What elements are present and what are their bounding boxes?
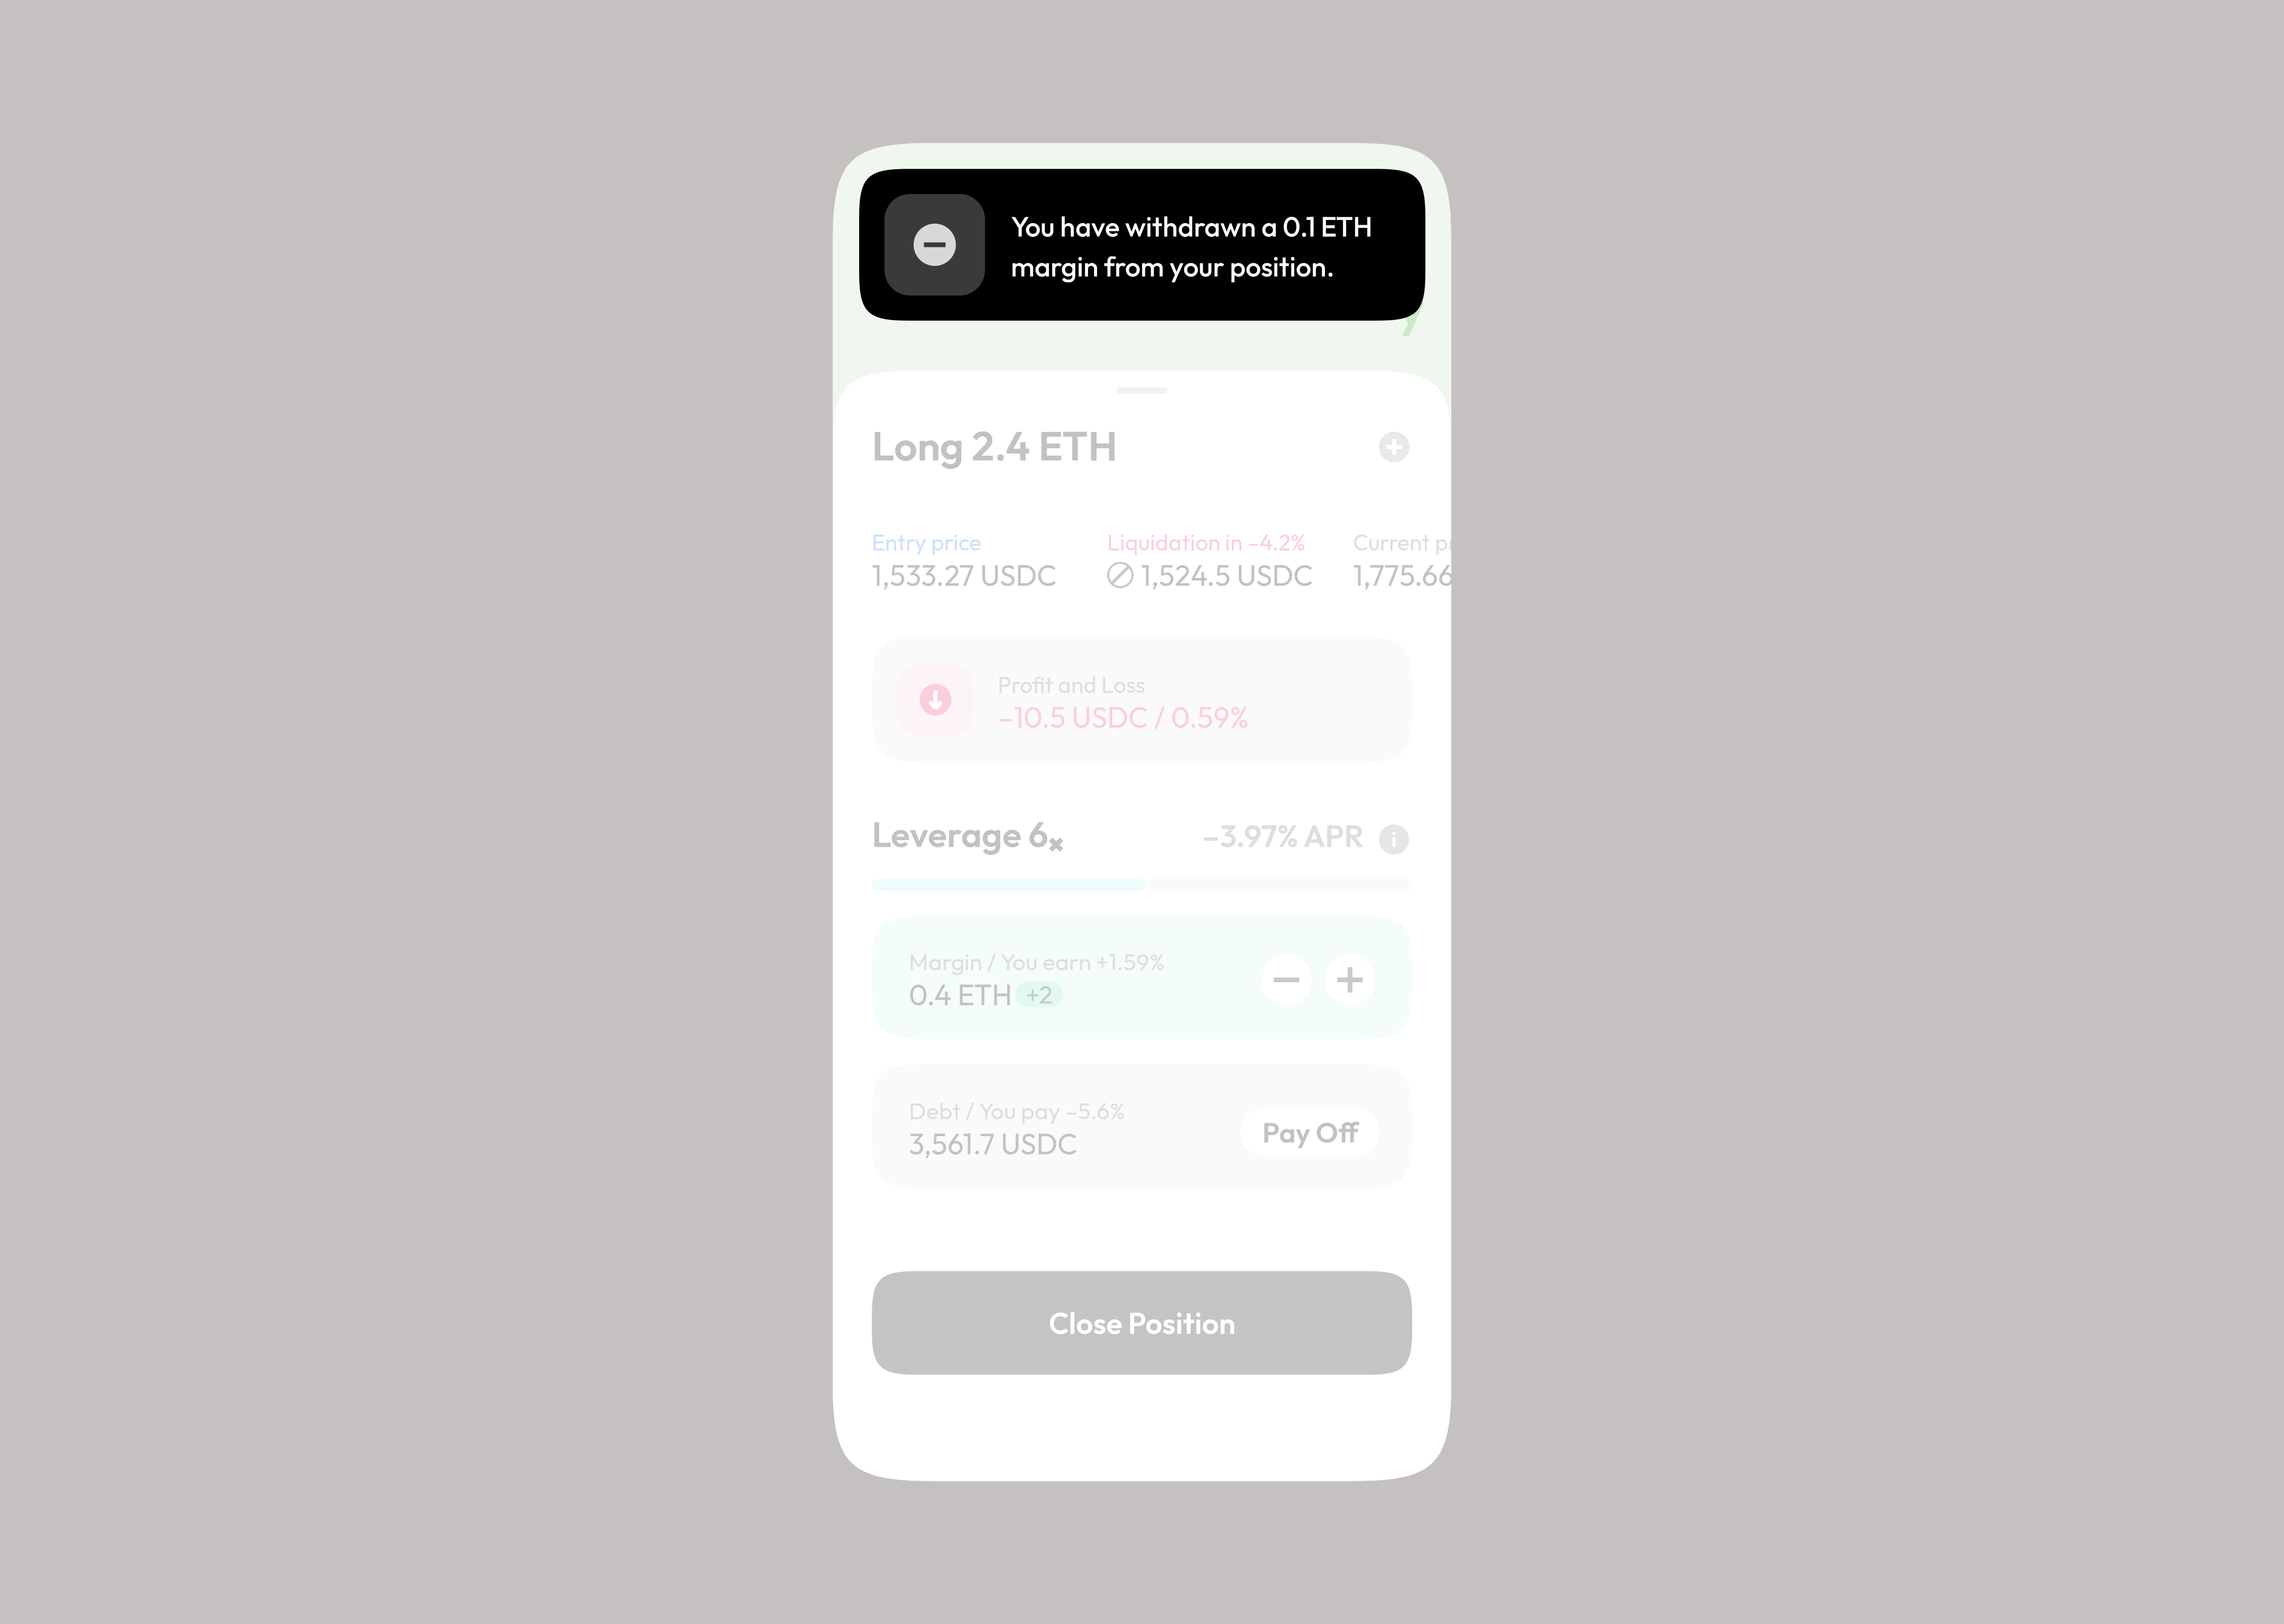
button[interactable]: Add to position: [1379, 432, 1410, 462]
staticText: Margin / You earn +1.59%: [909, 947, 1165, 976]
staticText: 1,524.5 USDC: [1141, 557, 1313, 593]
staticText: –3.97% APR: [1202, 816, 1364, 855]
staticText: Long 2.4 ETH: [872, 420, 1118, 471]
staticText: y: [1398, 277, 1424, 339]
staticText: You have withdrawn a 0.1 ETH margin from…: [1011, 209, 1373, 284]
button[interactable]: Close Position: [872, 1271, 1412, 1375]
button[interactable]: You have withdrawn a 0.1 ETH margin from…: [859, 169, 1425, 321]
button[interactable]: Decrease margin: [1261, 955, 1312, 1005]
button[interactable]: Pay Off: [1241, 1108, 1380, 1156]
staticText: 1,775.66 USDC: [1353, 557, 1537, 593]
staticText: Liquidation in –4.2%: [1107, 528, 1305, 556]
staticText: –10.5 USDC / 0.59%: [998, 699, 1249, 735]
staticText: +2: [1026, 979, 1052, 1010]
staticText: Entry price: [872, 528, 981, 556]
staticText: 1,533.27 USDC: [872, 557, 1057, 593]
staticText: Current price: [1353, 528, 1485, 556]
staticText: Close Position: [1049, 1304, 1235, 1342]
staticText: Pay Off: [1262, 1114, 1359, 1150]
staticText: Leverage 6: [872, 812, 1048, 856]
staticText: Debt / You pay –5.6%: [909, 1096, 1125, 1125]
button[interactable]: About APR: [1379, 824, 1409, 855]
staticText: Profit and Loss: [998, 670, 1145, 699]
staticText: 0.4 ETH: [909, 976, 1012, 1013]
button[interactable]: Increase margin: [1325, 955, 1375, 1005]
staticText: 3,561.7 USDC: [909, 1125, 1077, 1162]
